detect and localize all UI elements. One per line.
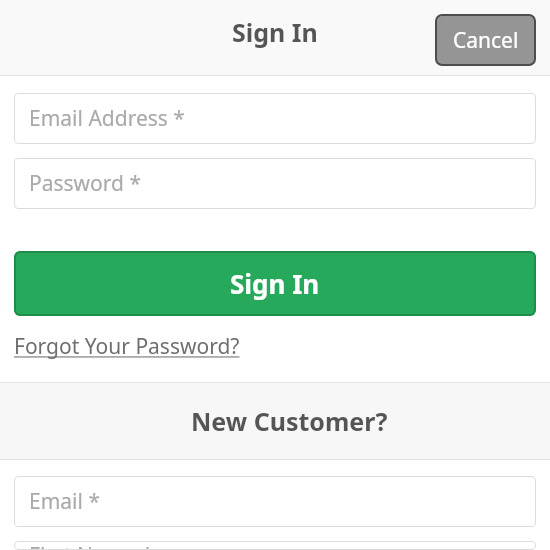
staticText: Password * — [29, 169, 142, 198]
staticText: Cancel — [453, 26, 519, 55]
button[interactable]: Email Address * — [14, 93, 536, 144]
staticText: Forgot Your Password? — [14, 332, 240, 361]
staticText: Sign In — [230, 266, 320, 301]
button[interactable]: First Name * — [14, 541, 536, 550]
staticText: Sign In — [232, 15, 318, 49]
staticText: New Customer? — [191, 404, 388, 438]
button[interactable]: Email * — [14, 476, 536, 527]
staticText: Email * — [29, 487, 100, 516]
button[interactable]: Sign In — [14, 251, 536, 316]
staticText: Email Address * — [29, 104, 185, 133]
button[interactable]: Forgot Your Password? — [14, 332, 240, 361]
staticText: First Name * — [29, 541, 154, 550]
button[interactable]: Password * — [14, 158, 536, 209]
button[interactable]: Cancel — [435, 14, 536, 66]
